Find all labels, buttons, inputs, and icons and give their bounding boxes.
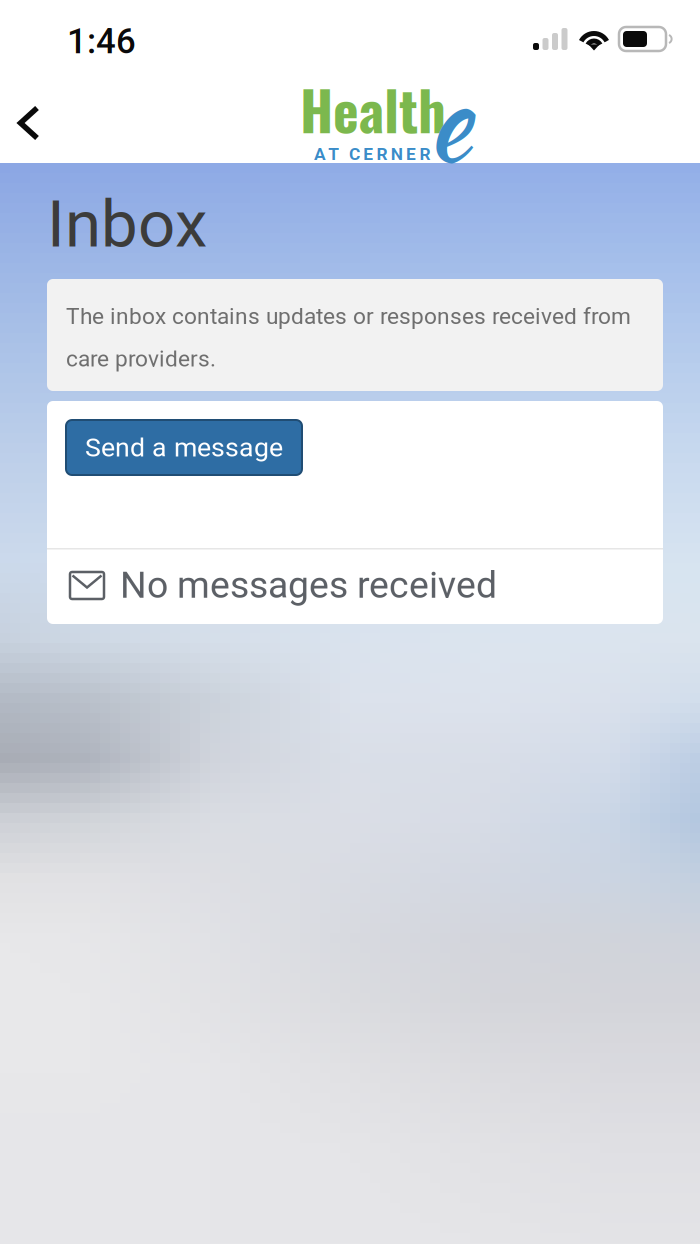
staticText: No messages received — [120, 563, 497, 607]
button[interactable]: Back — [0, 92, 60, 154]
staticText: Inbox — [47, 186, 207, 263]
staticText: The inbox contains updates or responses … — [66, 303, 631, 372]
staticText: AT CERNER — [314, 144, 430, 164]
button[interactable]: Send a message — [66, 420, 302, 475]
staticText: Send a message — [85, 432, 283, 463]
staticText: 1:46 — [67, 21, 136, 62]
staticText: e — [427, 44, 470, 199]
staticText: Health — [300, 68, 446, 149]
